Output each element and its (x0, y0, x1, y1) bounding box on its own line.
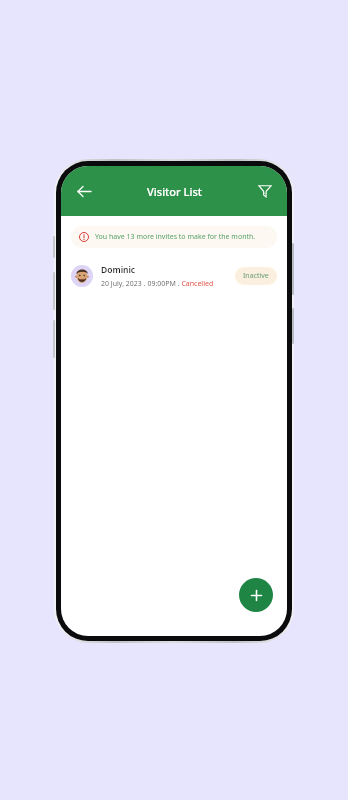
staticText: Inactive (243, 271, 269, 281)
staticText: You have 13 more invites to make for the… (95, 232, 256, 242)
button[interactable]: Filter (251, 177, 279, 205)
button[interactable]: Back (69, 176, 99, 206)
button[interactable]: You have 13 more invites to make for the… (71, 226, 277, 248)
staticText: 20 July, 2023 . 09:00PM . Cancelled (101, 279, 214, 289)
button[interactable]: Add visitor (239, 578, 273, 612)
staticText: Visitor List (147, 184, 202, 199)
button[interactable]: Dominic (61, 256, 287, 296)
staticText: Dominic (101, 264, 136, 276)
button[interactable]: Inactive (235, 267, 277, 285)
